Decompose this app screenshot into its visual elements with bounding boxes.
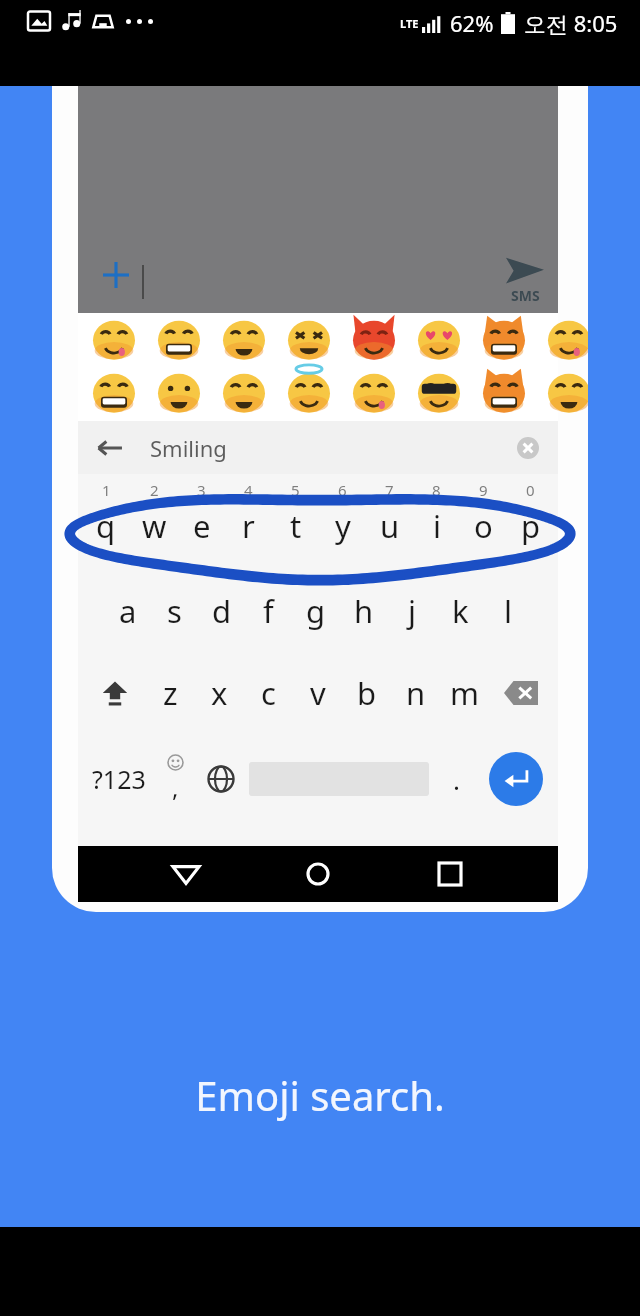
button[interactable]: 8 [413, 474, 460, 570]
staticText: u [380, 505, 400, 547]
button[interactable]: v [293, 652, 342, 734]
staticText: LTE [400, 16, 419, 31]
button[interactable]: h [340, 570, 388, 652]
button[interactable]: Send SMS [506, 256, 544, 305]
staticText: , [172, 771, 179, 804]
button[interactable]: g [292, 570, 340, 652]
button[interactable]: z [146, 652, 195, 734]
staticText: 7 [385, 480, 394, 500]
button[interactable]: Enter [479, 734, 552, 824]
staticText: m [450, 672, 479, 714]
staticText: n [406, 672, 426, 714]
staticText: j [408, 590, 416, 632]
staticText: i [433, 505, 441, 547]
staticText: s [167, 590, 182, 632]
button[interactable]: k [436, 570, 484, 652]
button[interactable]: Back [92, 430, 128, 466]
button[interactable]: Shift [84, 652, 146, 734]
button[interactable]: d [198, 570, 245, 652]
staticText: . [453, 762, 460, 797]
staticText: Smiling [150, 433, 227, 463]
button[interactable]: 0 [507, 474, 554, 570]
button[interactable]: . [434, 734, 479, 824]
staticText: f [263, 590, 274, 632]
button[interactable]: Home [294, 850, 342, 898]
staticText: c [261, 672, 276, 714]
staticText: 4 [244, 480, 253, 500]
button[interactable]: ?123 [84, 734, 153, 824]
button[interactable]: j [388, 570, 436, 652]
button[interactable]: c [244, 652, 293, 734]
staticText: d [212, 590, 232, 632]
button[interactable]: x [195, 652, 244, 734]
staticText: w [142, 505, 167, 547]
staticText: v [310, 672, 326, 714]
staticText: l [504, 590, 512, 632]
staticText: e [193, 505, 211, 547]
staticText: 9 [479, 480, 488, 500]
staticText: 8 [432, 480, 441, 500]
button[interactable] [243, 734, 434, 824]
button[interactable]: 5 [272, 474, 319, 570]
button[interactable]: 3 [178, 474, 225, 570]
button[interactable]: Back [162, 850, 210, 898]
staticText: 2 [150, 480, 159, 500]
staticText: h [354, 590, 374, 632]
staticText: Emoji search. [0, 1068, 640, 1122]
button[interactable]: Backspace [489, 652, 552, 734]
button[interactable]: Clear search [512, 432, 544, 464]
staticText: x [211, 672, 228, 714]
staticText: k [452, 590, 469, 632]
staticText: r [242, 505, 255, 547]
staticText: y [335, 505, 351, 547]
staticText: g [306, 590, 326, 632]
button[interactable]: Back [78, 421, 558, 474]
staticText: 6 [338, 480, 347, 500]
button[interactable]: b [342, 652, 391, 734]
button[interactable]: f [245, 570, 292, 652]
button[interactable]: 7 [366, 474, 413, 570]
button[interactable]: a [104, 570, 151, 652]
staticText: z [163, 672, 178, 714]
staticText: 62% [450, 8, 494, 38]
button[interactable]: Change language [198, 734, 243, 824]
staticText: b [357, 672, 377, 714]
staticText: ?123 [92, 762, 146, 796]
button[interactable]: n [391, 652, 440, 734]
staticText: a [119, 590, 137, 632]
button[interactable]: 6 [319, 474, 366, 570]
staticText: 3 [197, 480, 206, 500]
staticText: t [290, 505, 302, 547]
button[interactable]: 1 [82, 474, 130, 570]
button[interactable]: l [484, 570, 532, 652]
staticText: p [521, 505, 541, 547]
button[interactable]: Emoji [153, 734, 198, 824]
button[interactable]: 2 [130, 474, 178, 570]
staticText: 오전 8:05 [524, 8, 618, 38]
staticText: 1 [102, 480, 111, 500]
staticText: 5 [291, 480, 300, 500]
staticText: o [474, 505, 493, 547]
staticText: SMS [511, 286, 540, 305]
button[interactable]: m [440, 652, 489, 734]
staticText: 0 [526, 480, 535, 500]
staticText: q [96, 505, 116, 547]
button[interactable]: 4 [225, 474, 272, 570]
button[interactable]: 9 [460, 474, 507, 570]
button[interactable]: s [151, 570, 198, 652]
button[interactable]: Add attachment [96, 255, 136, 295]
button[interactable]: Recents [426, 850, 474, 898]
